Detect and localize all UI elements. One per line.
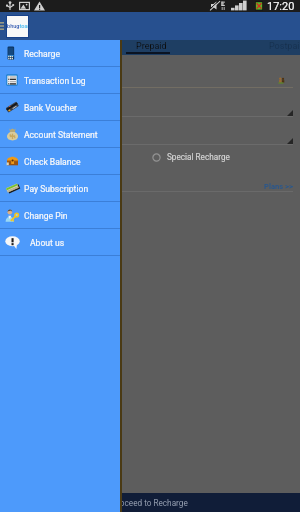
staticText: Change Pin	[24, 211, 68, 221]
staticText: Postpaid	[269, 41, 300, 52]
button[interactable]: Pay Subscription	[0, 175, 120, 202]
button[interactable]: Proceed to Recharge	[0, 493, 300, 512]
staticText: Special Recharge	[167, 152, 230, 162]
button[interactable]: Account Statement	[0, 121, 120, 148]
staticText: Account Statement	[24, 130, 98, 140]
button[interactable]: Prepaid	[121, 40, 178, 55]
button[interactable]: Open navigation drawer	[0, 22, 4, 30]
button[interactable]: Pick contact	[278, 77, 285, 84]
button[interactable]: bhugtoan	[7, 16, 28, 37]
staticText: Bank Voucher	[24, 103, 77, 113]
button[interactable]: Transaction Log	[0, 67, 120, 94]
staticText: Check Balance	[24, 157, 81, 167]
staticText: Transaction Log	[24, 76, 86, 86]
staticText: Proceed to Recharge	[112, 498, 188, 508]
button[interactable]: Plans >>	[264, 182, 293, 191]
staticText: bhugtoan	[7, 23, 28, 30]
staticText: Recharge	[24, 49, 60, 59]
staticText: Prepaid	[136, 41, 167, 52]
staticText: 17:20	[267, 0, 295, 12]
button[interactable]: About us	[0, 229, 120, 256]
button[interactable]: Check Balance	[0, 148, 120, 175]
staticText: Plans >>	[264, 182, 293, 191]
button[interactable]: Postpaid	[262, 40, 300, 55]
button[interactable]: Recharge	[0, 40, 120, 67]
staticText: About us	[30, 238, 65, 248]
button[interactable]: Special Recharge	[152, 152, 230, 162]
staticText: Pay Subscription	[24, 184, 89, 194]
button[interactable]: Change Pin	[0, 202, 120, 229]
button[interactable]: Bank Voucher	[0, 94, 120, 121]
